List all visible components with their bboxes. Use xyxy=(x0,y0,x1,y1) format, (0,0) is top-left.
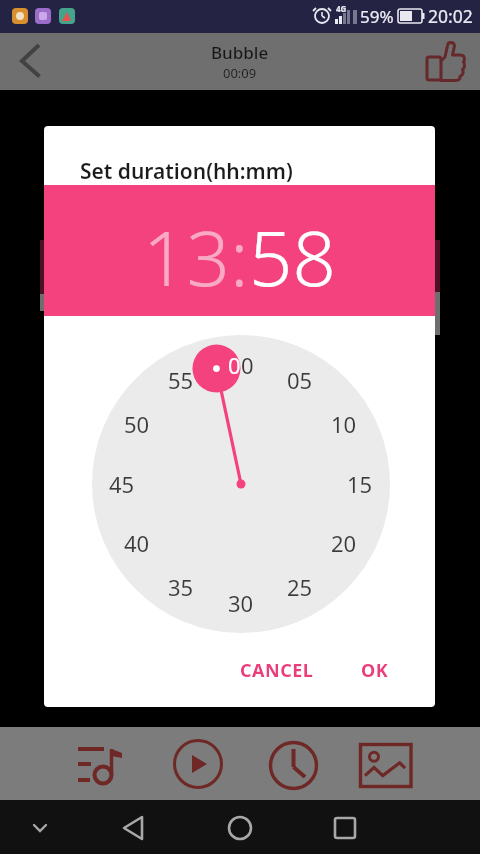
staticText: 20:02 xyxy=(428,4,473,28)
button[interactable] xyxy=(0,33,62,90)
staticText: 59% xyxy=(360,5,394,28)
staticText: 15 xyxy=(347,469,373,499)
button[interactable] xyxy=(360,727,480,800)
staticText: 0 xyxy=(228,350,241,380)
staticText: CANCEL xyxy=(240,658,314,683)
staticText: 05 xyxy=(287,365,313,395)
staticText: OK xyxy=(361,658,389,683)
staticText: 00:09 xyxy=(223,64,257,82)
button[interactable] xyxy=(418,33,480,90)
button[interactable] xyxy=(214,800,347,854)
staticText: 0 xyxy=(241,350,254,380)
button[interactable] xyxy=(0,727,120,800)
button[interactable]: OK xyxy=(340,647,410,693)
staticText: 58 xyxy=(249,205,336,309)
button[interactable] xyxy=(120,727,240,800)
button[interactable]: CANCEL xyxy=(222,647,332,693)
staticText: 30 xyxy=(228,588,254,618)
button[interactable] xyxy=(0,800,80,854)
staticText: Bubble xyxy=(211,41,269,64)
staticText: 50 xyxy=(124,409,150,439)
staticText: 4G xyxy=(336,3,347,14)
staticText: 10 xyxy=(331,409,357,439)
staticText: Set duration(hh:mm) xyxy=(80,157,293,186)
button[interactable] xyxy=(240,727,360,800)
button[interactable] xyxy=(80,800,214,854)
staticText: : xyxy=(230,205,249,309)
button[interactable] xyxy=(347,800,480,854)
staticText: 13 xyxy=(143,205,230,309)
staticText: 40 xyxy=(124,528,150,558)
staticText: 20 xyxy=(331,528,357,558)
staticText: 45 xyxy=(109,469,135,499)
staticText: 55 xyxy=(168,365,194,395)
staticText: 25 xyxy=(287,572,313,602)
staticText: 35 xyxy=(168,572,194,602)
